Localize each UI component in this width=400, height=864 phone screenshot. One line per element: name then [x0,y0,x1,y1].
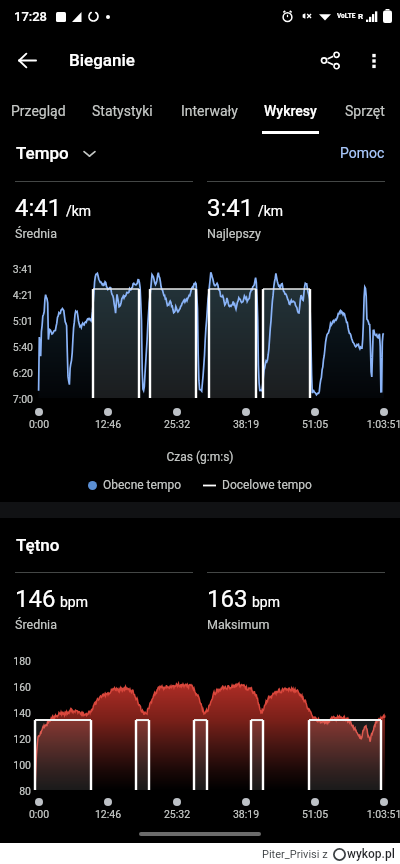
staticText: 0:00 [9,808,69,820]
button[interactable]: Wykresy [253,88,327,134]
staticText: Interwały [181,103,238,119]
staticText: 140 [2,707,31,719]
staticText: 80 [2,785,31,797]
staticText: bpm [60,594,88,610]
staticText: /km [258,203,284,219]
staticText: 5:01 [4,315,33,327]
button[interactable]: Tempo [16,143,96,163]
staticText: Najlepszy [207,226,261,241]
button[interactable]: More options [352,38,396,82]
staticText: 25:32 [147,418,207,430]
staticText: R [358,12,364,21]
staticText: 12:46 [78,418,138,430]
button[interactable]: Interwały [168,88,250,134]
button[interactable]: Sprzęt [335,88,395,134]
staticText: Bieganie [69,50,135,70]
staticText: Statystyki [92,103,153,119]
staticText: 1:03:51 [354,808,400,820]
staticText: Średnia [15,617,57,632]
button[interactable]: Statystyki [79,88,165,134]
staticText: Sprzęt [345,103,385,119]
button[interactable]: Back [7,40,47,80]
staticText: Tempo [16,143,69,163]
staticText: 1:03:51 [354,418,400,430]
staticText: Czas (g:m:s) [0,450,400,464]
staticText: /km [66,203,92,219]
staticText: 12:46 [78,808,138,820]
staticText: wykop.pl [347,847,395,861]
staticText: 38:19 [216,418,276,430]
staticText: Piter_Privisi z [262,848,328,861]
staticText: 6:20 [4,367,33,379]
staticText: 7:00 [4,393,33,405]
staticText: 25:32 [147,808,207,820]
staticText: Przegląd [11,103,66,119]
staticText: 100 [2,759,31,771]
staticText: 17:28 [14,9,48,24]
staticText: 160 [2,681,31,693]
staticText: bpm [252,594,280,610]
staticText: 38:19 [216,808,276,820]
staticText: 0:00 [9,418,69,430]
staticText: 51:05 [285,418,345,430]
staticText: 5:40 [4,341,33,353]
staticText: Wykresy [264,103,317,119]
staticText: Maksimum [207,617,270,632]
staticText: Pomoc [340,145,385,161]
button[interactable]: Pomoc [340,145,385,161]
button[interactable]: Przegląd [0,88,76,134]
staticText: Obecne tempo [103,478,181,492]
staticText: Średnia [15,226,57,241]
staticText: 3:41 [207,194,254,222]
staticText: 4:21 [4,289,33,301]
staticText: VoLTE [337,12,356,20]
staticText: 146 [15,585,56,613]
staticText: 163 [207,585,248,613]
staticText: 180 [2,655,31,667]
button[interactable]: Share [308,38,352,82]
staticText: 3:41 [4,263,33,275]
staticText: Docelowe tempo [222,478,312,492]
staticText: Tętno [16,535,60,555]
staticText: 51:05 [285,808,345,820]
staticText: 4:41 [15,194,62,222]
staticText: 120 [2,733,31,745]
